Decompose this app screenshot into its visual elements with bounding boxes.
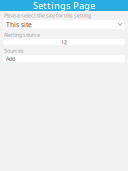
staticText: This site — [6, 20, 32, 29]
staticText: Please select the site for this setting — [4, 12, 91, 19]
staticText: Settings Page — [33, 0, 95, 12]
staticText: Add — [6, 55, 15, 62]
staticText: Alerting source — [4, 31, 40, 38]
staticText: Sources — [4, 47, 24, 54]
button[interactable]: This site — [3, 20, 125, 29]
staticText: 12 — [61, 39, 67, 46]
